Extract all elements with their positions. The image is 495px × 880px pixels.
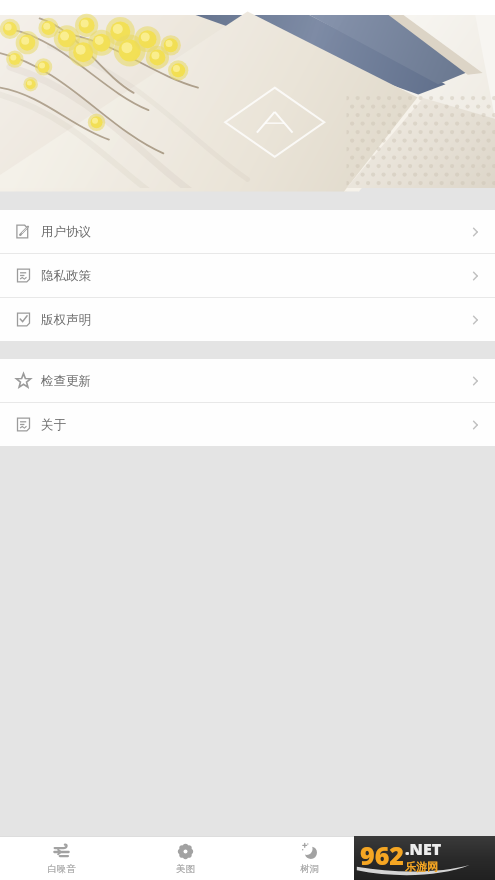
staticText: 树洞 — [300, 863, 319, 875]
staticText: 检查更新 — [41, 373, 91, 389]
button[interactable]: 用户协议 — [0, 210, 495, 253]
staticText: .NET — [405, 838, 442, 860]
staticText: 美图 — [176, 863, 195, 875]
staticText: 白噪音 — [47, 863, 76, 875]
staticText: 版权声明 — [41, 312, 91, 328]
staticText: 关于 — [41, 417, 66, 433]
button[interactable]: 隐私政策 — [0, 254, 495, 297]
button[interactable]: 版权声明 — [0, 298, 495, 341]
button[interactable]: 树洞 — [247, 837, 371, 880]
button[interactable]: 白噪音 — [0, 837, 123, 880]
staticText: 隐私政策 — [41, 268, 91, 284]
button[interactable]: 检查更新 — [0, 359, 495, 402]
button[interactable]: 美图 — [123, 837, 247, 880]
staticText: 乐游网 — [405, 860, 438, 874]
button[interactable]: 关于 — [0, 403, 495, 446]
staticText: 用户协议 — [41, 224, 91, 240]
staticText: 962 — [360, 838, 404, 872]
